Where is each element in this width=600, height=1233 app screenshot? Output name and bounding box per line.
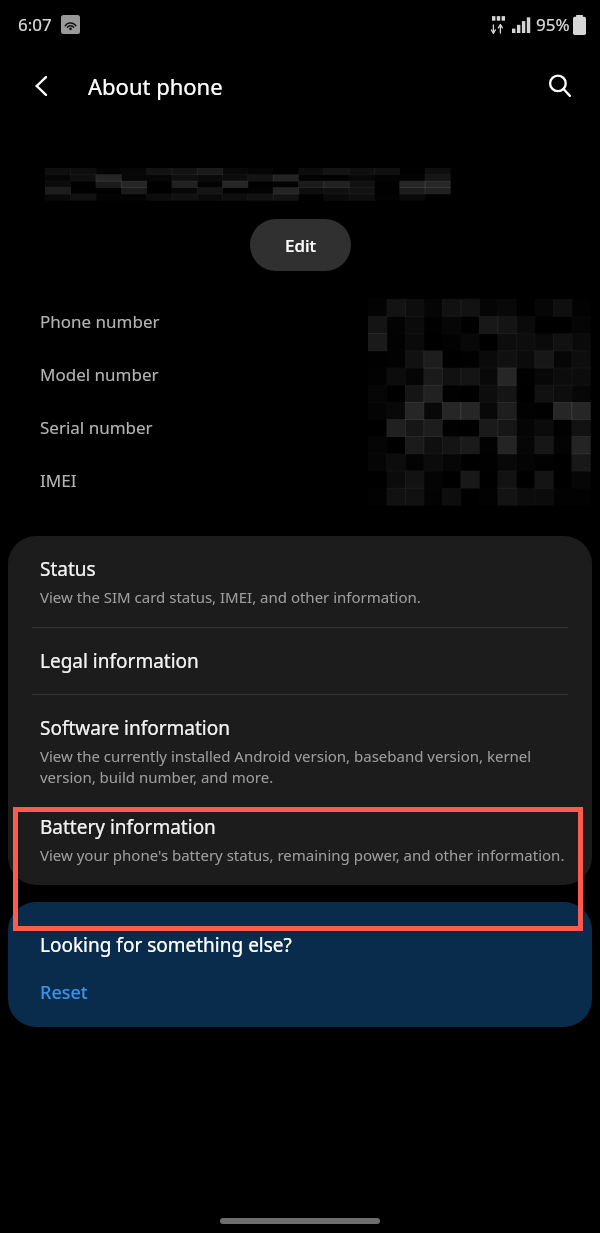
staticText: Battery information	[40, 814, 216, 840]
button[interactable]: Battery information	[8, 794, 592, 871]
staticText: 95%	[536, 13, 570, 36]
staticText: Model number	[40, 363, 159, 386]
button[interactable]: Edit	[250, 219, 351, 271]
staticText: IMEI	[40, 469, 77, 492]
button[interactable]: Search	[536, 62, 584, 110]
staticText: Legal information	[40, 648, 199, 674]
staticText: 6:07	[18, 13, 52, 36]
button[interactable]: Status	[8, 536, 592, 613]
staticText: Software information	[40, 715, 230, 741]
button[interactable]: Reset	[40, 980, 88, 1005]
staticText: View your phone's battery status, remain…	[40, 845, 565, 865]
staticText: Serial number	[40, 416, 153, 439]
staticText: Phone number	[40, 310, 160, 333]
button[interactable]: Back	[20, 64, 64, 108]
staticText: Edit	[285, 234, 317, 257]
staticText: Looking for something else?	[40, 932, 292, 958]
button[interactable]: Legal information	[8, 628, 592, 680]
button[interactable]: Software information	[8, 695, 592, 794]
staticText: Status	[40, 556, 96, 582]
staticText: Reset	[40, 980, 88, 1005]
staticText: View the currently installed Android ver…	[40, 746, 566, 788]
staticText: View the SIM card status, IMEI, and othe…	[40, 587, 421, 607]
staticText: About phone	[88, 71, 223, 101]
